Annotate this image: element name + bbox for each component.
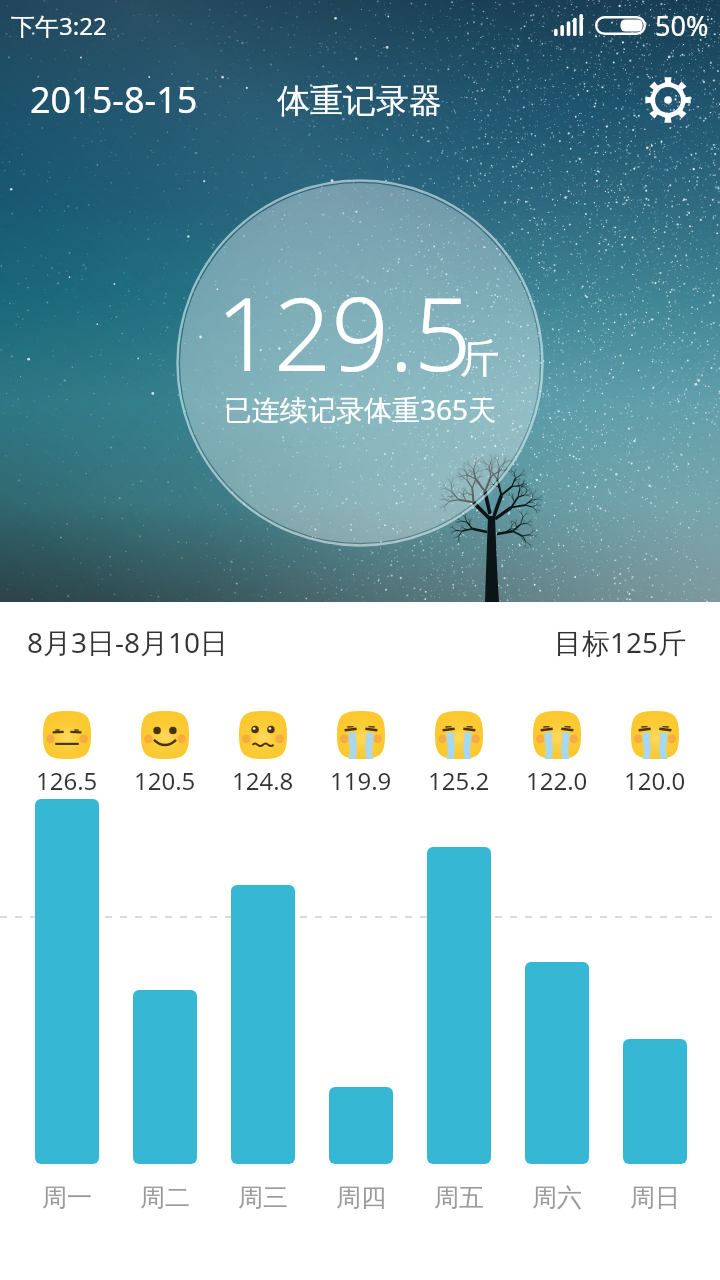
button[interactable]: 120.0 <box>606 705 704 1215</box>
staticText: 周四 <box>336 1182 386 1213</box>
button[interactable]: 122.0 <box>508 705 606 1215</box>
button[interactable]: 125.2 <box>410 705 508 1215</box>
staticText: 斤 <box>460 333 500 383</box>
staticText: 2015-8-15 <box>30 75 198 124</box>
staticText: 体重记录器 <box>277 80 442 122</box>
staticText: 已连续记录体重365天 <box>224 390 497 428</box>
staticText: 120.5 <box>134 764 196 797</box>
button[interactable]: Current weight 129.5 jin <box>178 181 542 545</box>
button[interactable]: Settings <box>640 72 696 128</box>
staticText: 120.0 <box>624 764 686 797</box>
staticText: 周二 <box>140 1182 190 1213</box>
staticText: 目标125斤 <box>554 623 687 661</box>
staticText: 124.8 <box>232 764 294 797</box>
staticText: 周五 <box>434 1182 484 1213</box>
staticText: 50% <box>655 7 709 44</box>
staticText: 周日 <box>630 1182 680 1213</box>
button[interactable]: 119.9 <box>312 705 410 1215</box>
staticText: 126.5 <box>36 764 98 797</box>
staticText: 下午3:22 <box>11 9 107 42</box>
staticText: 周三 <box>238 1182 288 1213</box>
staticText: 119.9 <box>330 764 392 797</box>
button[interactable]: 2015-8-15 <box>30 75 198 124</box>
staticText: 周一 <box>42 1182 92 1213</box>
button[interactable]: 目标125斤 <box>554 623 687 661</box>
button[interactable]: 8月3日-8月10日 <box>27 623 229 661</box>
staticText: 8月3日-8月10日 <box>27 623 229 661</box>
staticText: 129.5 <box>216 263 472 401</box>
button[interactable]: 124.8 <box>214 705 312 1215</box>
staticText: 125.2 <box>428 764 490 797</box>
staticText: 122.0 <box>526 764 588 797</box>
button[interactable]: 120.5 <box>116 705 214 1215</box>
staticText: 周六 <box>532 1182 582 1213</box>
button[interactable]: 126.5 <box>18 705 116 1215</box>
